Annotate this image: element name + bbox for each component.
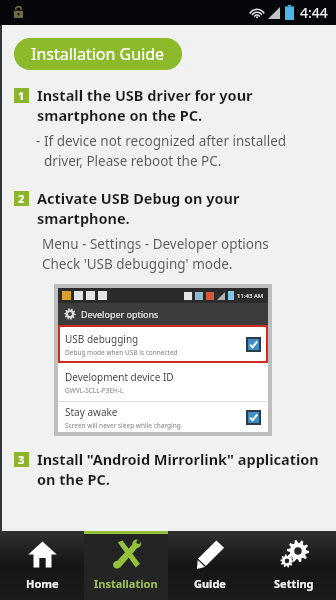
staticText: Home (26, 576, 59, 591)
staticText: 3 (18, 452, 25, 467)
other: Home (28, 540, 57, 569)
staticText: Installation (94, 576, 158, 591)
other: Installation (112, 540, 141, 569)
staticText: Development device ID (65, 370, 174, 384)
button[interactable]: Installation (84, 531, 168, 600)
staticText: USB debugging (65, 332, 139, 346)
staticText: Guide (194, 576, 226, 591)
staticText: - (36, 132, 41, 150)
staticText: 2 (18, 191, 25, 206)
other: Setting (280, 540, 309, 569)
staticText: 4:44 (300, 3, 328, 22)
staticText: Developer options (81, 308, 159, 320)
staticText: Stay awake (65, 405, 118, 419)
staticText: If device not recognized after installed… (44, 132, 287, 170)
button[interactable]: Guide (168, 531, 252, 600)
button[interactable]: Home (0, 531, 84, 600)
button[interactable]: Setting (252, 531, 336, 600)
staticText: Screen will never sleep while charging (65, 421, 181, 430)
staticText: Install the USB driver for your smartpho… (37, 85, 253, 125)
staticText: Menu - Settings - Developer options Chec… (42, 235, 269, 273)
staticText: Setting (274, 576, 314, 591)
button[interactable]: Installation Guide (14, 38, 182, 70)
staticText: Installation Guide (31, 43, 165, 65)
staticText: 11:43 AM (237, 292, 264, 300)
other: Guide (196, 540, 225, 569)
staticText: Debug mode when USB is connected (65, 348, 178, 357)
staticText: Install "Android Mirrorlink" application… (37, 449, 319, 489)
staticText: 1 (18, 88, 25, 103)
staticText: Activate USB Debug on your smartphone. (37, 188, 240, 228)
staticText: GWVL-SCLL-P3EH-L (65, 386, 124, 395)
